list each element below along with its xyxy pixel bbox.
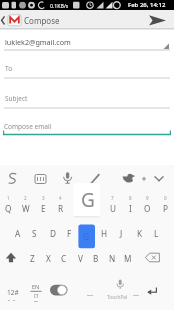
staticText: V [78,253,83,264]
staticText: 7 [111,195,114,201]
button[interactable] [72,280,142,302]
staticText: O [144,203,151,214]
button[interactable] [144,248,164,266]
button[interactable]: E [35,201,52,215]
staticText: G [81,187,95,213]
button[interactable]: V [72,251,88,265]
button[interactable] [26,280,44,300]
button[interactable] [60,168,76,186]
button[interactable]: W [17,201,34,215]
staticText: G [83,231,90,243]
staticText: 9 [146,195,149,201]
staticText: TouchPal [107,294,128,301]
button[interactable]: Y [87,201,104,215]
staticText: P [163,203,168,214]
button[interactable]: 12# [3,287,23,297]
staticText: 0.1KB/s [50,2,69,9]
staticText: EN [32,283,40,290]
button[interactable]: U [104,201,121,215]
button[interactable]: Compose email [4,121,84,132]
button[interactable] [32,168,50,186]
button[interactable]: J [113,226,130,240]
staticText: I [129,203,132,214]
button[interactable]: Z [24,251,40,265]
button[interactable]: B [88,251,104,265]
button[interactable] [88,168,104,186]
button[interactable]: R [52,201,69,215]
staticText: To [5,64,13,73]
button[interactable] [120,168,138,186]
button[interactable]: I [122,201,139,215]
staticText: 0 [164,195,167,201]
staticText: Compose [24,15,60,26]
button[interactable]: X [40,251,56,265]
staticText: W [22,203,30,214]
button[interactable]: N [104,251,120,265]
button[interactable] [48,280,70,298]
button[interactable]: T [70,201,87,215]
staticText: B [93,253,99,264]
staticText: U [110,203,116,214]
staticText: X [46,253,51,264]
staticText: 3 [42,195,45,201]
staticText: 8 [129,195,132,201]
button[interactable]: H [96,226,113,240]
button[interactable]: K [131,226,148,240]
button[interactable]: To [5,63,65,74]
button[interactable]: F [61,226,78,240]
staticText: Z [30,253,35,264]
button[interactable]: Subject [5,93,65,104]
button[interactable]: S [26,226,43,240]
button[interactable] [4,168,22,186]
staticText: 4 [59,195,62,201]
staticText: Q [5,203,12,214]
staticText: 2 [24,195,27,201]
button[interactable] [2,248,20,266]
button[interactable] [150,168,168,186]
staticText: Feb 26, 14:12 [128,1,166,9]
button[interactable]: A [9,226,26,240]
staticText: Compose email [4,122,52,131]
button[interactable]: L [148,226,165,240]
staticText: Subject [5,94,28,103]
button[interactable]: M [120,251,136,265]
staticText: H [101,228,108,239]
button[interactable]: D [44,226,61,240]
staticText: M [124,253,132,264]
staticText: C [61,253,67,264]
button[interactable]: Q [0,201,17,215]
staticText: Y [93,203,98,214]
button[interactable] [142,280,164,300]
staticText: 1 [7,195,10,201]
staticText: K [137,228,143,239]
staticText: 12# [7,288,19,297]
staticText: A [15,228,21,239]
staticText: J [120,228,123,239]
staticText: IT [34,293,39,300]
button[interactable]: P [157,201,174,215]
staticText: R [58,203,64,214]
staticText: luklek2@gmail.com [5,37,71,47]
button[interactable] [0,10,22,29]
button[interactable] [144,12,170,28]
staticText: F [67,228,72,239]
staticText: S [32,228,37,239]
staticText: N [109,253,116,264]
staticText: D [50,228,56,239]
staticText: L [154,228,159,239]
button[interactable]: O [139,201,156,215]
button[interactable]: luklek2@gmail.com [5,36,125,48]
button[interactable]: C [56,251,72,265]
staticText: E [41,203,46,214]
